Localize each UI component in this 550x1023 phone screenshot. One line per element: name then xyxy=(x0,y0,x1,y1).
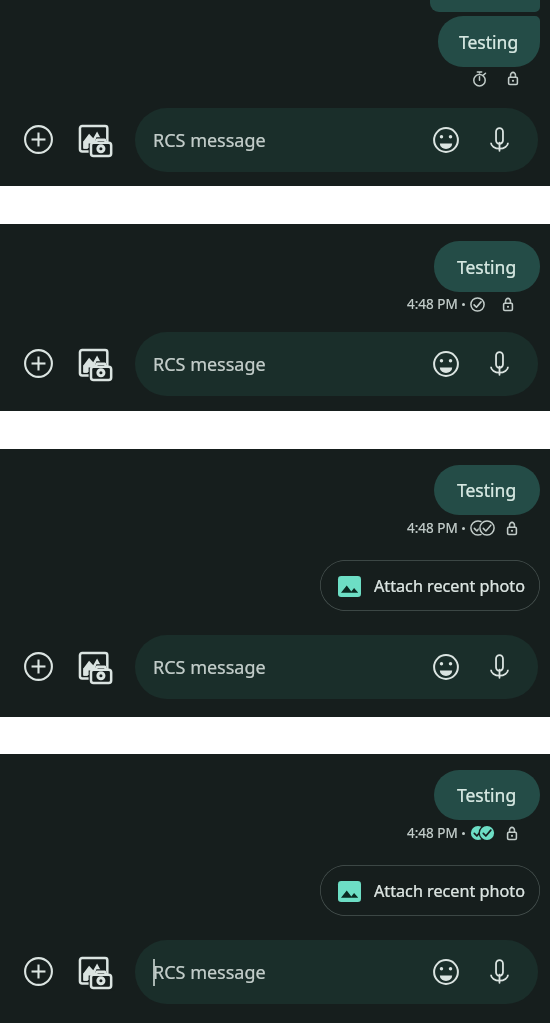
staticText: Testing xyxy=(457,478,517,502)
button[interactable]: Attach recent photo xyxy=(320,865,540,916)
button[interactable]: Testing xyxy=(438,16,540,67)
staticText: 4:48 PM xyxy=(407,824,458,842)
button[interactable]: Voice message xyxy=(489,654,510,680)
button[interactable]: Emoji xyxy=(433,654,459,680)
button[interactable]: Emoji xyxy=(433,351,459,377)
button[interactable]: Testing xyxy=(434,465,540,515)
button[interactable]: Gallery and camera xyxy=(79,650,111,682)
button[interactable]: Add attachment xyxy=(24,957,53,986)
button[interactable]: Voice message xyxy=(489,127,510,153)
staticText: Testing xyxy=(457,783,517,807)
button[interactable]: Gallery and camera xyxy=(79,347,111,379)
button[interactable]: RCS message xyxy=(135,332,538,396)
staticText: Attach recent photo xyxy=(374,880,525,902)
staticText: Attach recent photo xyxy=(374,575,525,597)
button[interactable]: Emoji xyxy=(433,959,459,985)
button[interactable]: Attach recent photo xyxy=(320,560,540,611)
button[interactable]: Testing xyxy=(434,241,540,292)
staticText: Testing xyxy=(457,255,517,279)
staticText: RCS message xyxy=(153,128,266,153)
staticText: 4:48 PM xyxy=(407,295,458,313)
button[interactable]: Add attachment xyxy=(24,125,53,154)
button[interactable]: Testing xyxy=(434,770,540,820)
button[interactable]: RCS message xyxy=(135,108,538,172)
button[interactable] xyxy=(430,0,540,12)
staticText: RCS message xyxy=(153,655,266,680)
button[interactable]: Emoji xyxy=(433,127,459,153)
staticText: 4:48 PM xyxy=(407,519,458,537)
button[interactable]: Add attachment xyxy=(24,652,53,681)
button[interactable]: Voice message xyxy=(489,351,510,377)
button[interactable]: RCS message xyxy=(135,635,538,699)
button[interactable]: RCS message xyxy=(135,940,538,1004)
button[interactable]: Gallery and camera xyxy=(79,955,111,987)
staticText: RCS message xyxy=(153,960,266,985)
staticText: RCS message xyxy=(153,352,266,377)
button[interactable]: Voice message xyxy=(489,959,510,985)
button[interactable]: Add attachment xyxy=(24,349,53,378)
staticText: Testing xyxy=(459,30,519,54)
button[interactable]: Gallery and camera xyxy=(79,123,111,155)
